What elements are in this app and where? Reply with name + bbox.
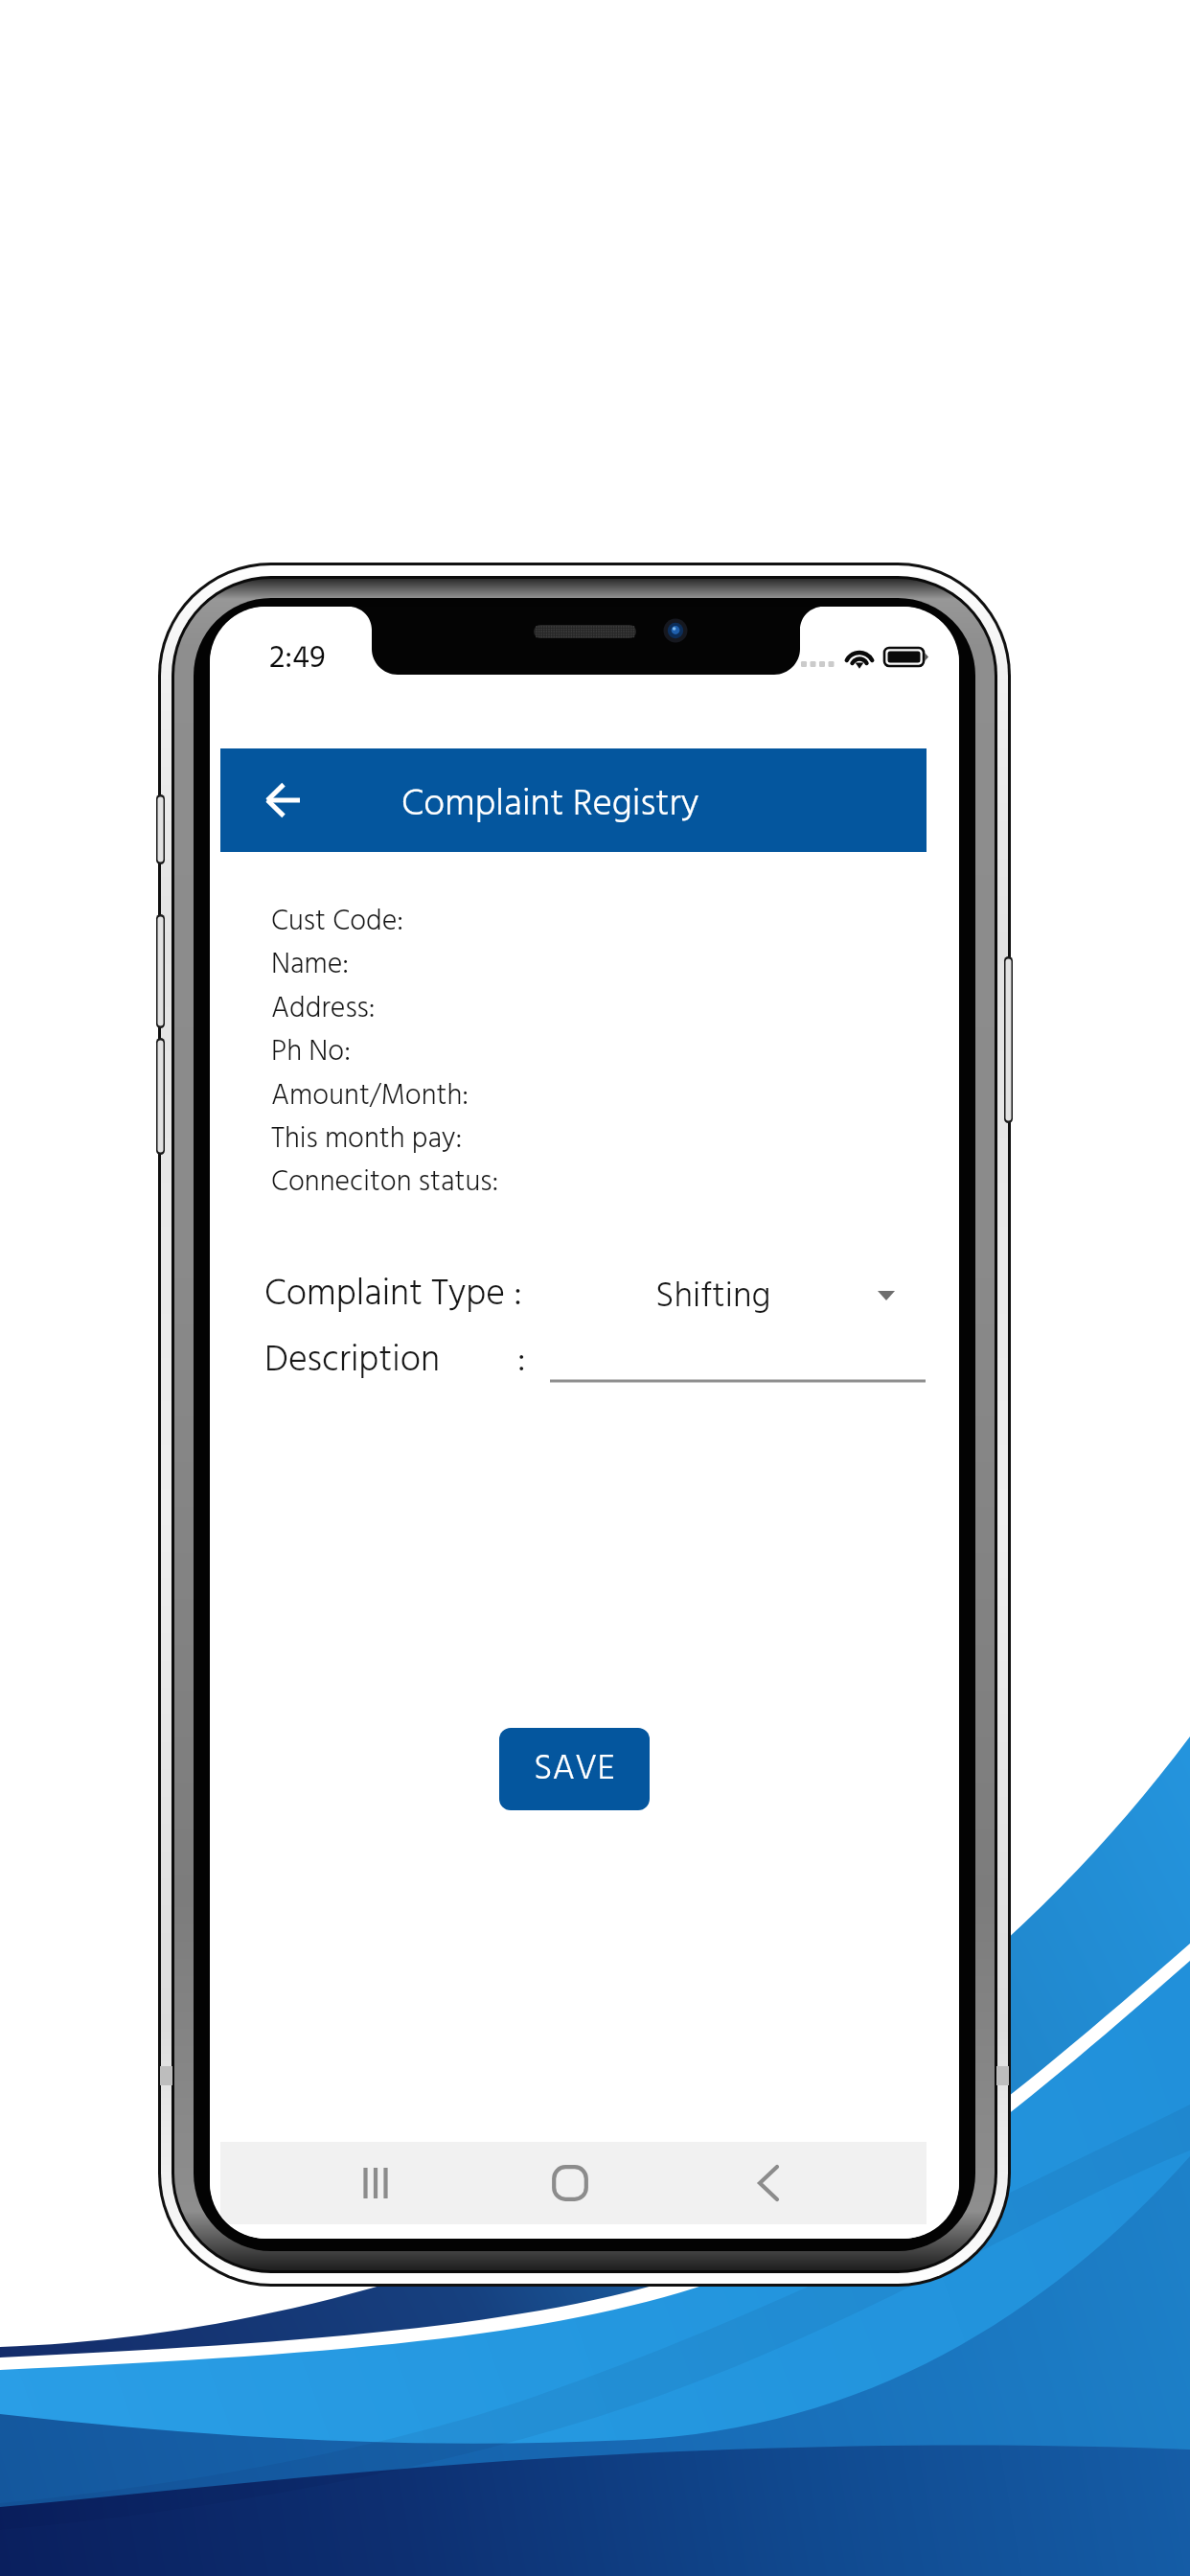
staticText: Amount/Month: <box>271 1073 469 1119</box>
staticText: Description <box>264 1332 441 1391</box>
staticText: Complaint Registry <box>401 775 699 835</box>
button[interactable]: Back <box>711 2142 826 2224</box>
staticText: Address: <box>271 986 376 1032</box>
staticText: 2:49 <box>269 633 326 684</box>
staticText: Cust Code: <box>271 899 403 945</box>
staticText: SAVE <box>534 1741 615 1798</box>
staticText: Ph No: <box>271 1029 351 1075</box>
button[interactable]: Recent apps <box>318 2142 433 2224</box>
button[interactable]: SAVE <box>499 1728 650 1810</box>
staticText: Shifting <box>655 1269 771 1325</box>
staticText: This month pay: <box>271 1116 463 1162</box>
button[interactable]: Back <box>237 750 328 850</box>
button[interactable]: Description input field <box>550 1334 926 1386</box>
button[interactable]: Home <box>513 2142 628 2224</box>
staticText: Conneciton status: <box>271 1160 499 1206</box>
staticText: Complaint Type : <box>264 1266 522 1324</box>
staticText: : <box>517 1332 526 1391</box>
button[interactable]: Shifting <box>632 1263 920 1330</box>
staticText: Name: <box>271 942 350 988</box>
